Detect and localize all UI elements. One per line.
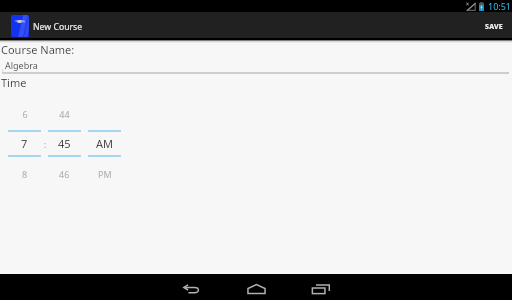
staticText: 44: [59, 108, 70, 120]
staticText: :: [44, 139, 47, 149]
staticText: 6: [22, 108, 28, 120]
button[interactable]: Home: [225, 274, 287, 300]
button[interactable]: 6: [8, 104, 41, 186]
staticText: 10:51: [488, 0, 512, 12]
button[interactable]: 44: [48, 104, 81, 186]
staticText: Course Name:: [1, 42, 75, 57]
button[interactable]: Algebra: [2, 55, 509, 74]
staticText: 8: [22, 168, 28, 180]
button[interactable]: SAVE: [478, 14, 512, 37]
staticText: SAVE: [485, 22, 504, 32]
button[interactable]: Recent apps: [290, 274, 352, 300]
button[interactable]: AM: [88, 104, 121, 186]
staticText: AM: [96, 136, 114, 151]
staticText: 7: [21, 136, 28, 151]
button[interactable]: Back: [160, 274, 222, 300]
staticText: New Course: [33, 21, 83, 33]
staticText: Algebra: [5, 59, 38, 71]
staticText: 45: [58, 136, 71, 151]
staticText: PM: [98, 168, 112, 180]
staticText: 46: [59, 168, 70, 180]
staticText: Time: [1, 75, 27, 90]
